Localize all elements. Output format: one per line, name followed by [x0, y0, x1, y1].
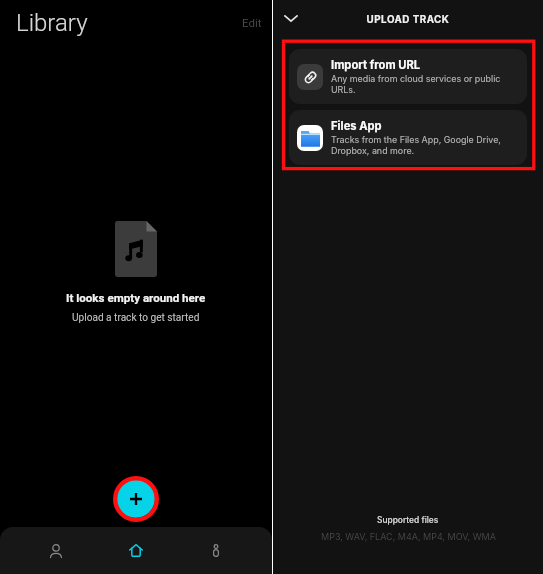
- staticText: Supported files: [377, 515, 439, 525]
- button[interactable]: Home: [116, 527, 156, 574]
- button[interactable]: Import from URL: [289, 49, 527, 104]
- staticText: Upload a track to get started: [72, 312, 200, 324]
- staticText: Edit: [242, 16, 262, 29]
- button[interactable]: Add track: [116, 479, 155, 518]
- button[interactable]: More info: [196, 527, 236, 574]
- staticText: It looks empty around here: [66, 291, 206, 305]
- staticText: Library: [16, 9, 88, 37]
- button[interactable]: Files App: [289, 110, 527, 165]
- staticText: Any media from cloud services or public …: [331, 73, 517, 95]
- button[interactable]: Collapse: [277, 4, 305, 32]
- button[interactable]: Edit: [235, 12, 269, 33]
- staticText: MP3, WAV, FLAC, M4A, MP4, MOV, WMA: [321, 531, 496, 542]
- button[interactable]: Profile: [36, 527, 76, 574]
- staticText: Files App: [331, 119, 382, 133]
- staticText: UPLOAD TRACK: [273, 14, 543, 26]
- staticText: Tracks from the Files App, Google Drive,…: [331, 134, 517, 156]
- staticText: Import from URL: [331, 58, 421, 72]
